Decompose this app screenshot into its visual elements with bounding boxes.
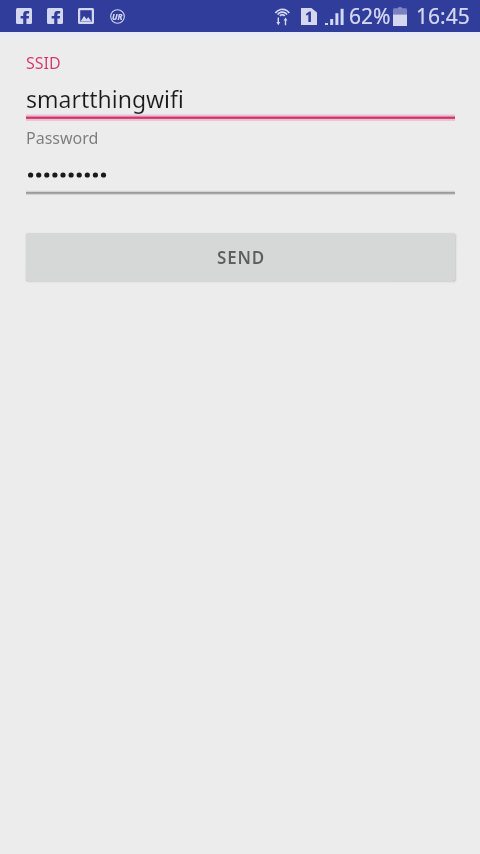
staticText: SEND — [217, 246, 265, 269]
staticText: 16:45 — [416, 2, 470, 31]
button[interactable]: SSID — [26, 48, 455, 122]
staticText: smartthingwifi — [26, 83, 184, 114]
button[interactable]: SEND — [26, 233, 455, 281]
other: UR app — [110, 9, 125, 24]
button[interactable]: Password — [26, 124, 455, 197]
staticText: UR — [112, 11, 123, 22]
staticText: 62% — [349, 2, 391, 31]
staticText: Password — [26, 127, 99, 149]
staticText: SSID — [26, 52, 61, 74]
